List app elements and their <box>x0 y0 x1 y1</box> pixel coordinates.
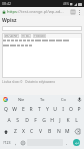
staticText: . <box>66 140 68 146</box>
button[interactable]: More options <box>76 9 82 15</box>
button[interactable]: D <box>22 115 31 126</box>
button[interactable]: Shift <box>1 126 11 137</box>
button[interactable]: V <box>36 126 45 137</box>
staticText: S <box>16 117 19 124</box>
staticText: J <box>59 117 61 124</box>
staticText: Co <box>61 97 66 102</box>
staticText: L <box>75 117 78 124</box>
staticText: ://test.orange.pl/wp-ad... <box>17 9 69 14</box>
button[interactable]: ?123 <box>1 137 12 148</box>
other: Secure connection <box>2 10 6 14</box>
staticText: V <box>39 128 43 135</box>
button[interactable]: G <box>40 115 48 126</box>
button[interactable]: S <box>13 115 22 126</box>
button[interactable]: Format tool <box>49 39 55 42</box>
button[interactable]: Format tool <box>11 39 14 42</box>
button[interactable]: Format tool <box>19 39 22 42</box>
staticText: U <box>53 106 57 113</box>
button[interactable]: To <box>32 95 53 104</box>
staticText: Nie <box>18 97 25 102</box>
button[interactable]: J <box>56 115 64 126</box>
staticText: K <box>66 117 70 124</box>
staticText: Wizualnie <box>5 34 18 38</box>
button[interactable]: A <box>4 115 13 126</box>
button[interactable]: U <box>51 104 59 115</box>
button[interactable]: Format tool <box>31 39 34 42</box>
button[interactable]: Format tool <box>17 44 20 47</box>
button[interactable]: Format tool <box>21 44 24 47</box>
staticText: Podglad <box>34 34 45 38</box>
staticText: Z <box>14 128 17 135</box>
staticText: R <box>29 106 33 113</box>
button[interactable] <box>2 26 82 31</box>
button[interactable]: Format tool <box>27 39 30 42</box>
button[interactable]: F <box>31 115 40 126</box>
staticText: Ostatnio edytowano <box>25 80 56 84</box>
button[interactable]: T <box>35 104 43 115</box>
button[interactable]: Format tool <box>42 39 48 42</box>
button[interactable]: Podglad <box>33 34 46 38</box>
staticText: H <box>50 117 54 124</box>
staticText: Liczba slow: 0 <box>2 80 23 84</box>
button[interactable]: Wizualnie <box>4 34 19 38</box>
button[interactable]: Tabs <box>69 8 76 15</box>
staticText: C <box>30 128 34 135</box>
button[interactable]: E <box>19 104 27 115</box>
button[interactable]: N <box>54 126 63 137</box>
button[interactable]: C <box>27 126 36 137</box>
button[interactable]: Q <box>1 104 10 115</box>
button[interactable]: P <box>75 104 83 115</box>
staticText: W <box>12 106 17 113</box>
staticText: M <box>65 128 70 135</box>
button[interactable]: Format tool <box>23 39 26 42</box>
button[interactable]: Format tool <box>15 39 18 42</box>
button[interactable]: , <box>12 137 19 148</box>
button[interactable]: B <box>45 126 54 137</box>
staticText: N <box>57 128 61 135</box>
staticText: https <box>7 9 17 14</box>
button[interactable]: W <box>10 104 19 115</box>
button[interactable]: L <box>72 115 80 126</box>
button[interactable]: Format tool <box>29 44 32 47</box>
button[interactable]: Google <box>0 95 10 104</box>
staticText: To <box>40 97 45 102</box>
staticText: A <box>7 117 11 124</box>
button[interactable]: M <box>63 126 72 137</box>
button[interactable]: Format tool <box>3 44 9 47</box>
button[interactable]: O <box>67 104 75 115</box>
button[interactable]: Format tool <box>7 39 10 42</box>
button[interactable]: Format tool <box>10 44 16 47</box>
button[interactable]: Z <box>11 126 19 137</box>
staticText: I <box>62 106 64 113</box>
button[interactable]: Format tool <box>56 39 62 42</box>
staticText: F <box>34 117 37 124</box>
button[interactable]: HTML <box>21 34 31 38</box>
button[interactable]: Y <box>43 104 51 115</box>
button[interactable]: Emoji <box>19 137 27 148</box>
button[interactable]: Nie <box>10 95 32 104</box>
button[interactable]: Co <box>53 95 74 104</box>
staticText: Q <box>4 106 8 113</box>
button[interactable]: . <box>63 137 70 148</box>
button[interactable]: Voice input <box>74 95 84 104</box>
button[interactable]: Format tool <box>63 39 69 42</box>
button[interactable]: Backspace <box>72 126 83 137</box>
button[interactable]: H <box>48 115 56 126</box>
staticText: E <box>22 106 25 113</box>
button[interactable]: Format tool <box>25 44 28 47</box>
staticText: Y <box>46 106 49 113</box>
button[interactable]: Enter <box>70 137 83 148</box>
staticText: P <box>77 106 81 113</box>
button[interactable]: K <box>64 115 72 126</box>
button[interactable]: Format tool <box>35 39 41 42</box>
button[interactable]: Format tool <box>3 39 6 42</box>
button[interactable] <box>2 48 82 78</box>
button[interactable]: I <box>59 104 67 115</box>
button[interactable]: R <box>27 104 35 115</box>
staticText: , <box>15 140 17 146</box>
staticText: O <box>69 106 73 113</box>
staticText: Wpisz <box>2 17 17 24</box>
staticText: HTML <box>22 34 30 38</box>
button[interactable]: X <box>19 126 27 137</box>
